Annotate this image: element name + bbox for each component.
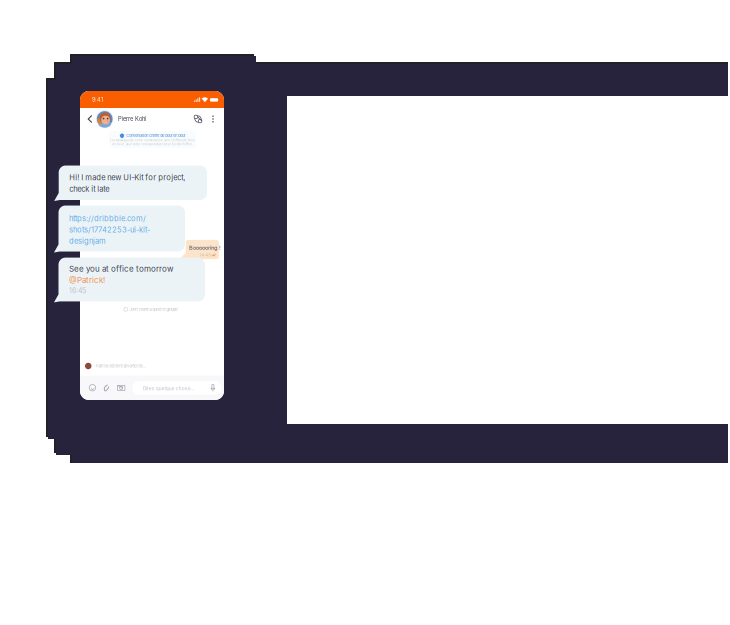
staticText: en bout, seul votre correspondant peut l… xyxy=(112,142,193,146)
staticText: Dites quelque chose... xyxy=(143,386,194,391)
staticText: Pierre Kohl xyxy=(118,115,146,122)
button[interactable]: Attach file xyxy=(99,375,112,400)
staticText: Conversation chiffré de bout en bout xyxy=(126,133,185,138)
staticText: @Patrick! xyxy=(69,275,105,285)
button[interactable]: Call xyxy=(190,108,206,130)
staticText: https://dribbble.com/ xyxy=(69,214,146,223)
staticText: Hi! I made new UI-Kit for project, xyxy=(69,173,185,182)
staticText: Boooooring ! xyxy=(189,244,221,251)
button[interactable]: More options xyxy=(206,108,220,130)
staticText: Patrick est en train d'écrire... xyxy=(95,363,145,368)
button[interactable]: Emoji xyxy=(86,375,99,400)
staticText: Les messages de cette conversation sont … xyxy=(110,139,195,142)
staticText: 16:45 xyxy=(69,287,86,295)
staticText: John Teahe a quitté le groupe xyxy=(129,307,177,312)
staticText: designjam xyxy=(69,236,106,246)
staticText: See you at office tomorrow xyxy=(69,264,174,274)
button[interactable]: Dites quelque chose... xyxy=(132,381,221,395)
staticText: 9:41 xyxy=(92,96,103,103)
button[interactable]: Camera xyxy=(115,375,128,400)
staticText: shots/17742253-ui-kit- xyxy=(69,225,150,234)
button[interactable]: Back xyxy=(82,108,98,130)
staticText: check it late xyxy=(69,184,109,194)
staticText: 14:45 xyxy=(200,252,211,257)
